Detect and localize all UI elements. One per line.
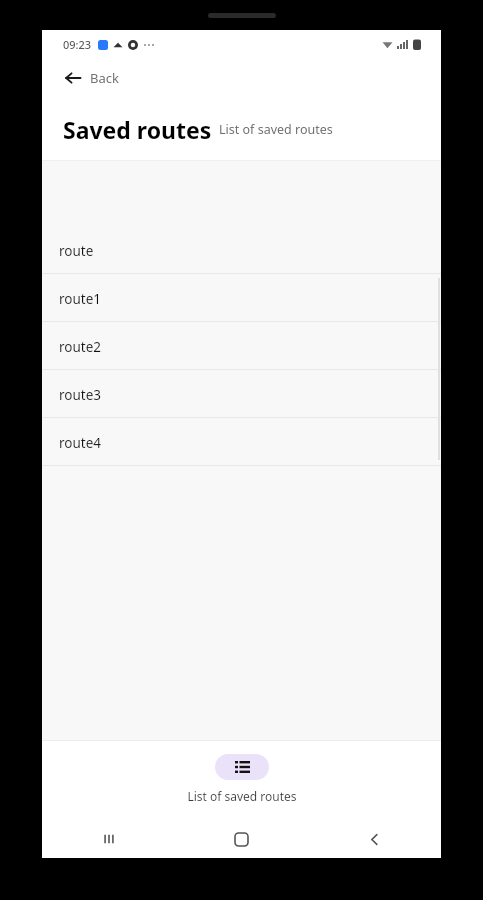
button[interactable]: Back [308, 820, 441, 858]
button[interactable]: List of saved routes [187, 754, 297, 804]
button[interactable]: route [42, 161, 441, 274]
staticText: route [59, 242, 94, 260]
staticText: List of saved routes [187, 788, 297, 804]
staticText: route3 [59, 386, 102, 404]
button[interactable]: route1 [42, 274, 441, 322]
button[interactable]: route4 [42, 418, 441, 466]
staticText: route4 [59, 434, 102, 452]
button[interactable]: Back [42, 58, 441, 98]
button[interactable]: route3 [42, 370, 441, 418]
staticText: route2 [59, 338, 102, 356]
button[interactable]: Home [175, 820, 308, 858]
staticText: 09:23 [63, 37, 92, 52]
staticText: Back [90, 69, 119, 87]
staticText: Saved routes [63, 114, 212, 145]
button[interactable]: Recents [42, 820, 175, 858]
staticText: route1 [59, 290, 102, 308]
button[interactable]: route2 [42, 322, 441, 370]
staticText: List of saved routes [219, 121, 333, 138]
